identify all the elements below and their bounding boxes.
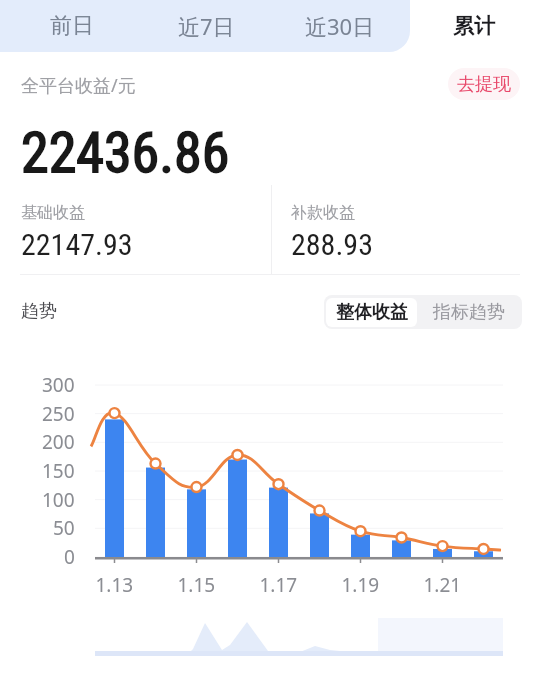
staticText: 指标趋势 [433,301,505,324]
staticText: 去提现 [457,73,511,96]
staticText: 累计 [453,13,495,39]
button[interactable]: 近30日 [273,0,407,52]
staticText: 22436.86 [21,120,230,186]
button[interactable]: 近7日 [139,0,273,52]
button[interactable]: 整体收益 [326,298,417,327]
staticText: 22147.93 [21,227,133,262]
staticText: 全平台收益/元 [21,73,136,98]
button[interactable]: 累计 [407,0,541,52]
staticText: 288.93 [291,227,373,262]
staticText: 整体收益 [336,301,408,324]
button[interactable]: 指标趋势 [417,298,520,327]
button[interactable]: 去提现 [448,68,520,100]
staticText: 趋势 [21,300,57,323]
staticText: 前日 [50,12,94,40]
staticText: 补款收益 [291,203,355,223]
staticText: 近7日 [178,11,235,41]
button[interactable]: 前日 [5,0,139,52]
staticText: 近30日 [305,11,375,41]
staticText: 基础收益 [21,203,85,223]
